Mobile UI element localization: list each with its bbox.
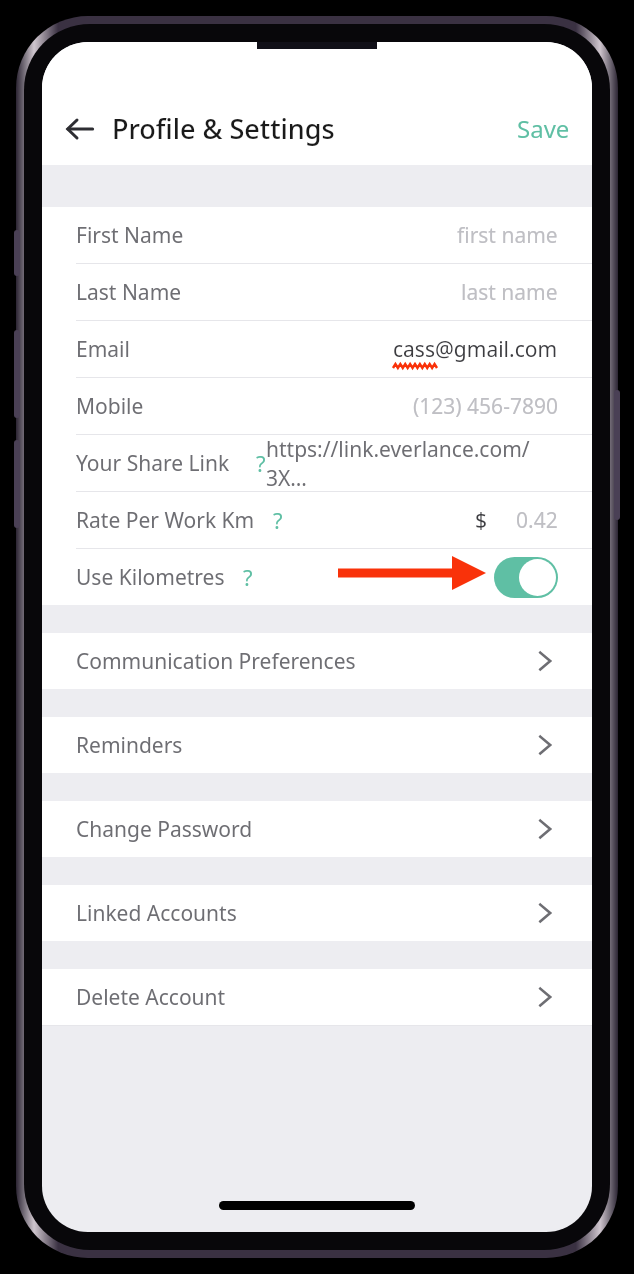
staticText: Save (517, 112, 570, 145)
staticText: Delete Account (76, 983, 226, 1012)
staticText: cass@gmail.com (393, 335, 558, 364)
staticText: Change Password (76, 815, 253, 844)
button[interactable]: Rate Per Work Km (42, 492, 592, 548)
staticText: Rate Per Work Km (76, 506, 255, 535)
button[interactable]: Delete Account (42, 969, 592, 1025)
staticText: $ (475, 506, 488, 535)
staticText: Mobile (76, 392, 144, 421)
button[interactable]: Email (42, 321, 592, 377)
button[interactable]: Your Share Link (42, 435, 592, 491)
staticText: Linked Accounts (76, 899, 237, 928)
button[interactable]: Save (501, 104, 586, 153)
staticText: Reminders (76, 731, 183, 760)
staticText: first name (457, 221, 558, 250)
staticText: Use Kilometres (76, 563, 225, 592)
button[interactable]: Communication Preferences (42, 633, 592, 689)
button[interactable]: Reminders (42, 717, 592, 773)
staticText: ? (273, 505, 283, 535)
staticText: ? (256, 448, 266, 478)
staticText: Email (76, 335, 130, 364)
staticText: First Name (76, 221, 184, 250)
button[interactable]: Mobile (42, 378, 592, 434)
staticText: last name (461, 278, 558, 307)
staticText: (123) 456-7890 (413, 392, 558, 421)
staticText: Last Name (76, 278, 182, 307)
staticText: Your Share Link (76, 449, 230, 478)
button[interactable]: Back (56, 105, 104, 153)
button[interactable]: Linked Accounts (42, 885, 592, 941)
button[interactable]: First Name (42, 207, 592, 263)
button[interactable]: Change Password (42, 801, 592, 857)
staticText: Communication Preferences (76, 647, 356, 676)
staticText: https://link.everlance.com/3X… (266, 435, 558, 491)
staticText: 0.42 (516, 506, 558, 535)
button[interactable]: Use Kilometres (42, 549, 592, 605)
button[interactable]: Use Kilometres toggle (494, 557, 558, 598)
staticText: Profile & Settings (112, 110, 335, 147)
button[interactable]: Last Name (42, 264, 592, 320)
staticText: ? (243, 562, 253, 592)
